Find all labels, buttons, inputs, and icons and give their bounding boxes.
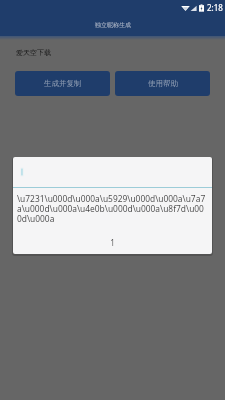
staticText: 生成并复制 [44, 79, 82, 88]
staticText: \u7231\u000d\u000a\u5929\u000d\u000a\u7a… [17, 193, 208, 225]
staticText: 独立昵称生成 [95, 21, 131, 29]
staticText: 2:18 [207, 2, 223, 13]
staticText: 1 [13, 237, 212, 248]
other: Wi-Fi [181, 4, 190, 12]
other: Signal [190, 4, 197, 12]
button[interactable]: 生成并复制 [15, 71, 110, 96]
staticText: 使用帮助 [148, 79, 178, 88]
staticText: 爱天空下载 [16, 48, 51, 57]
button[interactable]: 使用帮助 [115, 71, 210, 96]
other: Battery [199, 4, 204, 12]
